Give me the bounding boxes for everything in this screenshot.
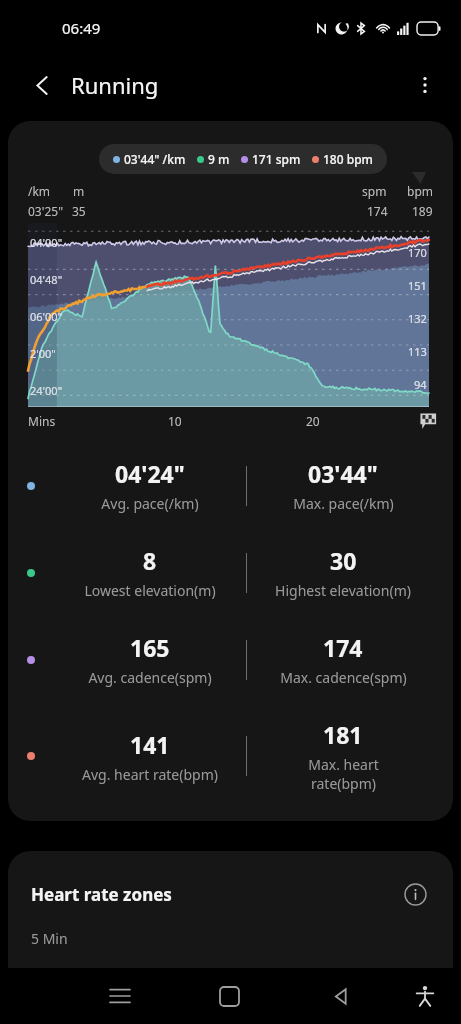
staticText: 94 <box>414 377 427 392</box>
staticText: Mins <box>28 413 56 429</box>
staticText: Running <box>71 70 159 100</box>
staticText: 165 <box>130 632 170 663</box>
staticText: Avg. heart rate(bpm) <box>82 765 218 784</box>
staticText: Max. pace(/km) <box>293 494 394 513</box>
button[interactable]: Info about heart rate zones <box>400 879 430 909</box>
staticText: 132 <box>408 311 427 326</box>
staticText: 30 <box>330 545 357 576</box>
staticText: 03'44" /km <box>124 151 186 167</box>
staticText: 180 bpm <box>323 151 373 167</box>
staticText: 03'44" <box>308 458 378 489</box>
staticText: 2'00" <box>30 346 56 361</box>
button[interactable]: Recent apps <box>96 972 144 1020</box>
button[interactable]: Back <box>317 972 365 1020</box>
staticText: 141 <box>130 729 170 760</box>
staticText: Avg. cadence(spm) <box>88 668 212 687</box>
staticText: Max. cadence(spm) <box>280 668 407 687</box>
button[interactable]: Heart rate zones <box>8 851 453 1008</box>
staticText: 151 <box>408 278 427 293</box>
staticText: 20 <box>306 413 320 429</box>
button[interactable]: 141 <box>8 719 453 793</box>
staticText: 171 spm <box>252 151 301 167</box>
staticText: 04'00" <box>30 235 63 250</box>
button[interactable]: Home <box>205 972 253 1020</box>
staticText: 174 <box>323 632 363 663</box>
staticText: 9 m <box>208 151 230 167</box>
staticText: Max. heart rate(bpm) <box>308 755 379 793</box>
button[interactable]: Back <box>22 65 62 105</box>
staticText: 8 <box>143 545 157 576</box>
staticText: 06'00" <box>30 309 63 324</box>
staticText: 04'48" <box>30 272 63 287</box>
staticText: spm <box>362 183 387 199</box>
staticText: 189 <box>412 203 433 219</box>
staticText: 170 <box>408 245 427 260</box>
staticText: 03'25" <box>28 203 64 219</box>
button[interactable]: 8 <box>8 545 453 600</box>
staticText: m <box>73 183 85 199</box>
staticText: Avg. pace(/km) <box>101 494 199 513</box>
button[interactable]: 03'44" /km <box>99 144 387 174</box>
staticText: Highest elevation(m) <box>275 581 411 600</box>
staticText: 24'00" <box>30 383 63 398</box>
staticText: 06:49 <box>62 18 101 38</box>
staticText: bpm <box>407 183 433 199</box>
button[interactable]: Accessibility <box>403 974 447 1018</box>
staticText: 35 <box>72 203 86 219</box>
staticText: 113 <box>408 344 427 359</box>
staticText: Heart rate zones <box>31 883 400 906</box>
button[interactable]: 165 <box>8 632 453 687</box>
button[interactable]: 04'24" <box>8 458 453 513</box>
staticText: 04'24" <box>115 458 185 489</box>
staticText: 174 <box>367 203 388 219</box>
staticText: /km <box>28 183 51 199</box>
staticText: Lowest elevation(m) <box>84 581 216 600</box>
staticText: 181 <box>323 719 363 750</box>
staticText: 10 <box>168 413 182 429</box>
button[interactable]: More options <box>403 63 447 107</box>
staticText: 5 Min <box>31 929 68 948</box>
